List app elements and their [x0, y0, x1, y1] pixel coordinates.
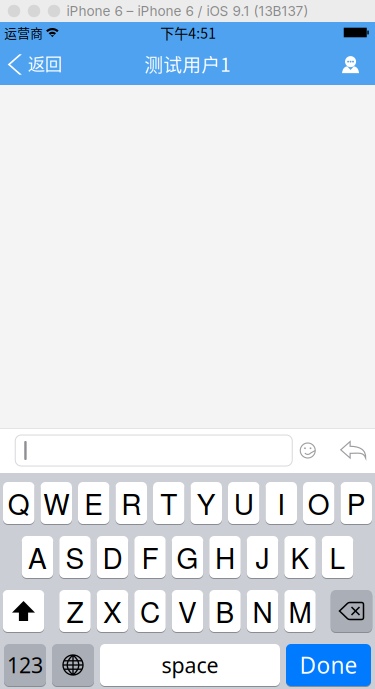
- button[interactable]: M: [284, 590, 316, 632]
- staticText: B: [215, 591, 234, 631]
- staticText: R: [121, 483, 141, 523]
- button[interactable]: J: [247, 536, 278, 578]
- staticText: 下午4:51: [160, 22, 216, 43]
- staticText: H: [215, 537, 235, 577]
- button[interactable]: Y: [190, 482, 222, 524]
- button[interactable]: Send: [337, 436, 369, 464]
- staticText: P: [347, 483, 366, 523]
- staticText: 运营商: [4, 23, 43, 42]
- button[interactable]: C: [134, 590, 166, 632]
- button[interactable]: Delete: [331, 590, 372, 632]
- staticText: 返回: [28, 50, 62, 76]
- button[interactable]: Done: [286, 644, 371, 686]
- staticText: T: [160, 483, 177, 523]
- staticText: J: [255, 537, 269, 577]
- button[interactable]: L: [322, 536, 353, 578]
- button[interactable]: Z: [59, 590, 91, 632]
- button[interactable]: F: [134, 536, 166, 578]
- button[interactable]: A: [22, 536, 53, 578]
- staticText: S: [65, 537, 84, 577]
- staticText: C: [140, 591, 160, 631]
- staticText: Done: [299, 650, 357, 680]
- button[interactable]: 返回: [0, 44, 78, 85]
- button[interactable]: Contact info: [334, 44, 368, 85]
- button[interactable]: T: [153, 482, 184, 524]
- button[interactable]: G: [172, 536, 203, 578]
- button[interactable]: R: [115, 482, 147, 524]
- staticText: A: [28, 537, 47, 577]
- staticText: 123: [7, 651, 43, 679]
- button[interactable]: H: [209, 536, 241, 578]
- button[interactable]: K: [284, 536, 316, 578]
- button[interactable]: S: [59, 536, 91, 578]
- button[interactable]: [15, 435, 292, 466]
- staticText: G: [176, 537, 198, 577]
- staticText: L: [329, 537, 345, 577]
- staticText: Z: [66, 591, 83, 631]
- button[interactable]: W: [40, 482, 72, 524]
- staticText: U: [234, 483, 254, 523]
- staticText: F: [141, 537, 158, 577]
- button[interactable]: N: [247, 590, 278, 632]
- button[interactable]: Q: [3, 482, 34, 524]
- button[interactable]: E: [78, 482, 109, 524]
- button[interactable]: D: [97, 536, 128, 578]
- button[interactable]: B: [209, 590, 241, 632]
- button[interactable]: O: [303, 482, 334, 524]
- staticText: Q: [8, 483, 30, 523]
- button[interactable]: Emoji: [297, 439, 319, 461]
- button[interactable]: V: [172, 590, 203, 632]
- staticText: Y: [197, 483, 216, 523]
- button[interactable]: X: [97, 590, 128, 632]
- button[interactable]: 123: [4, 644, 46, 686]
- staticText: X: [103, 591, 122, 631]
- staticText: E: [84, 483, 103, 523]
- staticText: O: [308, 483, 330, 523]
- staticText: W: [43, 483, 69, 523]
- button[interactable]: U: [228, 482, 259, 524]
- button[interactable]: Next keyboard: [52, 644, 94, 686]
- staticText: N: [252, 591, 272, 631]
- button[interactable]: space: [100, 644, 280, 686]
- staticText: I: [277, 483, 285, 523]
- button[interactable]: P: [340, 482, 372, 524]
- button[interactable]: Shift: [3, 590, 44, 632]
- staticText: 测试用户1: [144, 50, 230, 77]
- button[interactable]: I: [265, 482, 297, 524]
- staticText: K: [290, 537, 309, 577]
- staticText: M: [288, 591, 311, 631]
- staticText: V: [178, 591, 197, 631]
- staticText: space: [161, 651, 218, 679]
- staticText: iPhone 6 – iPhone 6 / iOS 9.1 (13B137): [66, 3, 308, 19]
- staticText: D: [102, 537, 122, 577]
